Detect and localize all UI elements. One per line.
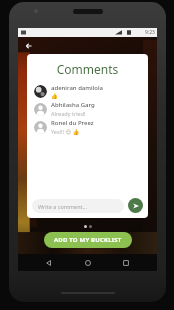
button[interactable]: adeniran damilola bbox=[27, 83, 148, 100]
button[interactable]: Back bbox=[22, 39, 36, 53]
button[interactable]: Recent apps bbox=[118, 255, 134, 271]
staticText: Abhilasha Garg bbox=[51, 101, 95, 109]
button[interactable]: Back bbox=[41, 255, 57, 271]
staticText: Already tried! bbox=[51, 110, 86, 117]
staticText: 👍 bbox=[51, 93, 58, 99]
button[interactable]: Ronel du Preez bbox=[27, 118, 148, 136]
staticText: Yes!!! 😍 👍 bbox=[51, 128, 80, 135]
staticText: Write a comment... bbox=[38, 203, 87, 210]
button[interactable]: Write a comment... bbox=[32, 199, 124, 213]
staticText: Ronel du Preez bbox=[51, 119, 94, 127]
staticText: Comments bbox=[27, 61, 148, 77]
staticText: 9:23 bbox=[145, 29, 155, 36]
staticText: adeniran damilola bbox=[51, 84, 103, 92]
button[interactable]: Send bbox=[128, 198, 143, 213]
button[interactable]: ADD TO MY BUCKLIST bbox=[44, 232, 132, 248]
staticText: ADD TO MY BUCKLIST bbox=[54, 236, 122, 244]
button[interactable]: Abhilasha Garg bbox=[27, 100, 148, 118]
button[interactable]: Home bbox=[80, 255, 96, 271]
